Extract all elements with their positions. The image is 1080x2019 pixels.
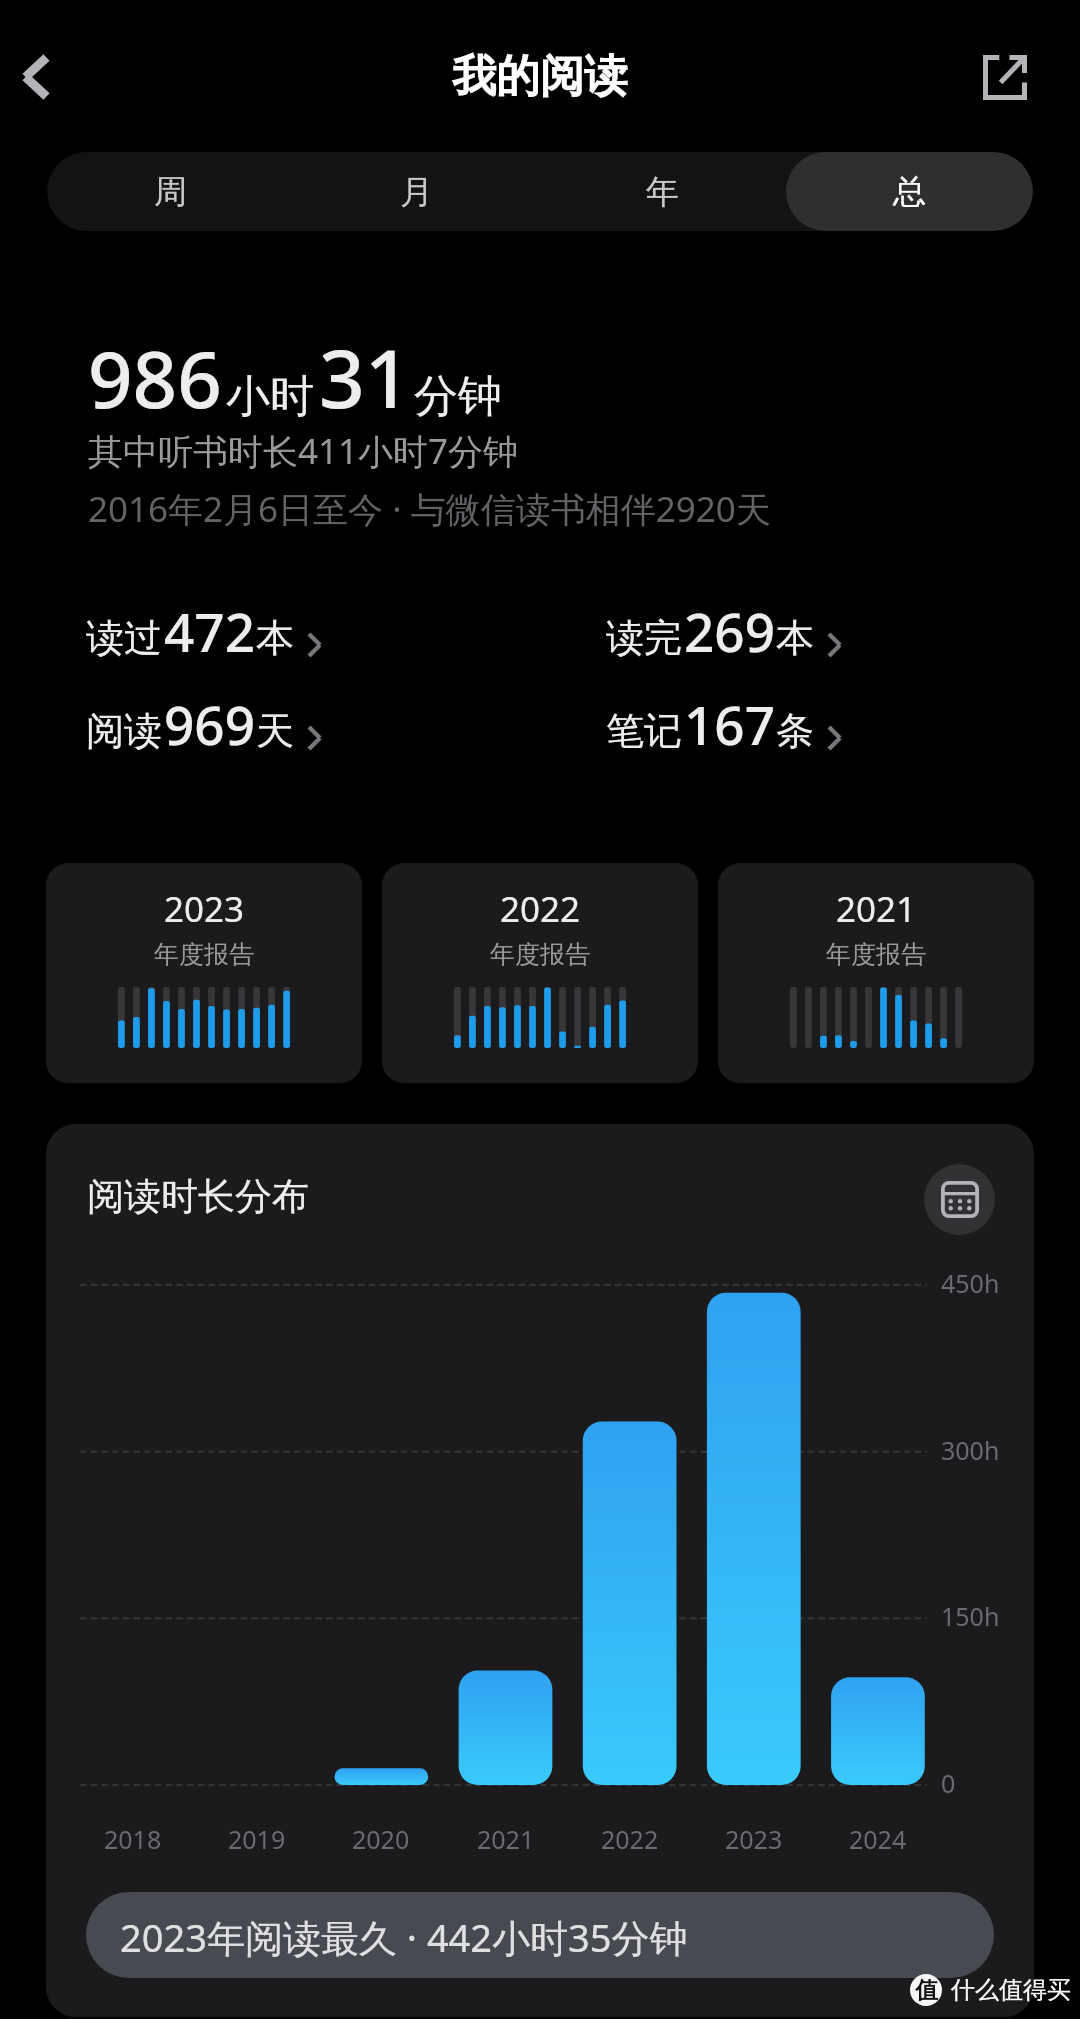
staticText: 条 — [776, 707, 814, 755]
staticText: 969 — [164, 688, 255, 760]
button[interactable]: 总 — [786, 152, 1033, 231]
button[interactable]: 周 — [47, 152, 293, 231]
button[interactable]: Calendar — [924, 1164, 995, 1235]
button[interactable]: 2023年阅读最久 · 442小时35分钟 — [86, 1892, 994, 1978]
button[interactable]: 笔记 — [606, 688, 842, 760]
staticText: 2020 — [352, 1822, 410, 1856]
staticText: 2022 — [601, 1822, 659, 1856]
staticText: 2023年阅读最久 · 442小时35分钟 — [120, 1911, 688, 1963]
staticText: 阅读 — [86, 707, 162, 755]
staticText: 年度报告 — [826, 939, 926, 970]
staticText: 450h — [941, 1266, 1000, 1300]
staticText: 472 — [164, 595, 255, 667]
staticText: 本 — [776, 614, 814, 662]
staticText: 笔记 — [606, 707, 682, 755]
button[interactable]: 2021 — [718, 863, 1034, 1083]
staticText: 其中听书时长411小时7分钟 — [88, 427, 519, 475]
button[interactable]: Share — [950, 22, 1060, 132]
staticText: 2024 — [849, 1822, 907, 1856]
staticText: 31 — [319, 322, 411, 431]
staticText: 值 — [915, 1976, 938, 2005]
button[interactable]: 读完 — [606, 595, 842, 667]
staticText: 2023 — [164, 885, 245, 933]
staticText: 年度报告 — [490, 939, 590, 970]
button[interactable]: 2023 — [46, 863, 362, 1083]
staticText: 2021 — [477, 1822, 535, 1856]
staticText: 读过 — [86, 614, 162, 662]
staticText: 167 — [684, 688, 775, 760]
staticText: 月 — [400, 171, 433, 213]
staticText: 年度报告 — [154, 939, 254, 970]
button[interactable]: 年 — [539, 152, 786, 231]
button[interactable]: 阅读 — [86, 688, 322, 760]
staticText: 我的阅读 — [452, 49, 628, 104]
staticText: 2021 — [836, 885, 917, 933]
staticText: 986 — [88, 325, 222, 431]
staticText: 周 — [154, 171, 187, 213]
staticText: 269 — [684, 595, 775, 667]
staticText: 什么值得买 — [951, 1975, 1071, 2005]
button[interactable]: 月 — [293, 152, 539, 231]
staticText: 300h — [941, 1433, 1000, 1467]
staticText: 2018 — [104, 1822, 162, 1856]
staticText: 分钟 — [414, 369, 502, 424]
staticText: 读完 — [606, 614, 682, 662]
staticText: 年 — [646, 171, 679, 213]
staticText: 阅读时长分布 — [87, 1173, 309, 1220]
staticText: 天 — [256, 707, 294, 755]
staticText: 2019 — [228, 1822, 286, 1856]
staticText: 小时 — [226, 369, 314, 424]
staticText: 本 — [256, 614, 294, 662]
staticText: 2016年2月6日至今 · 与微信读书相伴2920天 — [88, 485, 771, 533]
staticText: 150h — [941, 1599, 1000, 1633]
staticText: 总 — [893, 171, 926, 213]
staticText: 2023 — [725, 1822, 783, 1856]
button[interactable]: Back — [0, 17, 96, 137]
button[interactable]: 读过 — [86, 595, 322, 667]
staticText: 0 — [941, 1766, 956, 1800]
button[interactable]: 2022 — [382, 863, 698, 1083]
staticText: 2022 — [500, 885, 581, 933]
